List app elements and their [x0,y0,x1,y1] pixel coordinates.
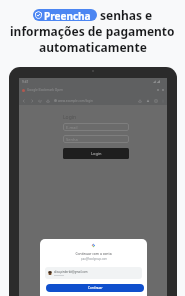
button[interactable]: Login [63,148,129,159]
staticText: Preencha [44,9,91,21]
staticText: Continuar [88,286,103,290]
other: Browser control [46,99,50,103]
staticText: www.example.com/login [58,99,93,103]
staticText: senhas e [100,7,153,23]
other: Browser control [30,99,34,103]
staticText: Continuar com a conta [75,251,112,256]
button[interactable]: alisa.pinderbit@gmail.com [45,267,142,279]
staticText: automaticamente [39,39,147,55]
button[interactable]: Senha [63,135,129,143]
other: Browser control [22,99,26,103]
staticText: alisa.pinderbit@gmail.com [54,270,88,274]
other: Browser control [154,99,158,103]
other: Browser control [146,99,150,103]
staticText: Senha [66,137,78,142]
staticText: informações de pagamento [10,23,175,39]
staticText: E-mail [66,125,78,130]
button[interactable]: E-mail [63,123,129,131]
staticText: Google Bookmark Open [27,88,64,92]
other: Browser control [38,99,42,103]
staticText: pau@foodgroup.com [81,257,107,261]
other: Browser control [138,99,142,103]
button[interactable]: Continuar [46,284,144,292]
staticText: 9:41 [22,80,29,84]
staticText: Login [63,114,77,121]
staticText: Login [91,151,102,156]
